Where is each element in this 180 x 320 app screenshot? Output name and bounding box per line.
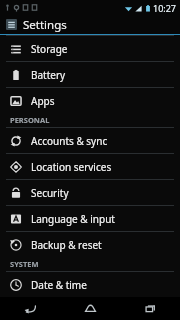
button[interactable]: Security: [0, 180, 180, 205]
button[interactable]: Battery: [0, 62, 180, 87]
staticText: Settings: [23, 17, 67, 33]
button[interactable]: Recents: [120, 297, 180, 320]
button[interactable]: Language & input: [0, 206, 180, 231]
button[interactable]: Date & time: [0, 272, 180, 297]
button[interactable]: Location services: [0, 154, 180, 179]
staticText: Language & input: [31, 212, 115, 226]
staticText: SYSTEM: [10, 259, 39, 269]
staticText: Apps: [31, 94, 55, 108]
staticText: Battery: [31, 68, 66, 82]
staticText: Location services: [31, 160, 112, 174]
staticText: Security: [31, 186, 69, 200]
staticText: Date & time: [31, 278, 87, 292]
staticText: Accounts & sync: [31, 134, 108, 148]
button[interactable]: Accounts & sync: [0, 128, 180, 153]
button[interactable]: Storage: [0, 36, 180, 61]
staticText: Storage: [31, 42, 68, 56]
button[interactable]: Backup & reset: [0, 232, 180, 257]
staticText: 10:27: [153, 2, 177, 14]
button[interactable]: Apps: [0, 88, 180, 113]
staticText: PERSONAL: [10, 115, 50, 125]
button[interactable]: Home: [60, 297, 120, 320]
button[interactable]: Back: [0, 297, 60, 320]
staticText: Backup & reset: [31, 238, 102, 252]
